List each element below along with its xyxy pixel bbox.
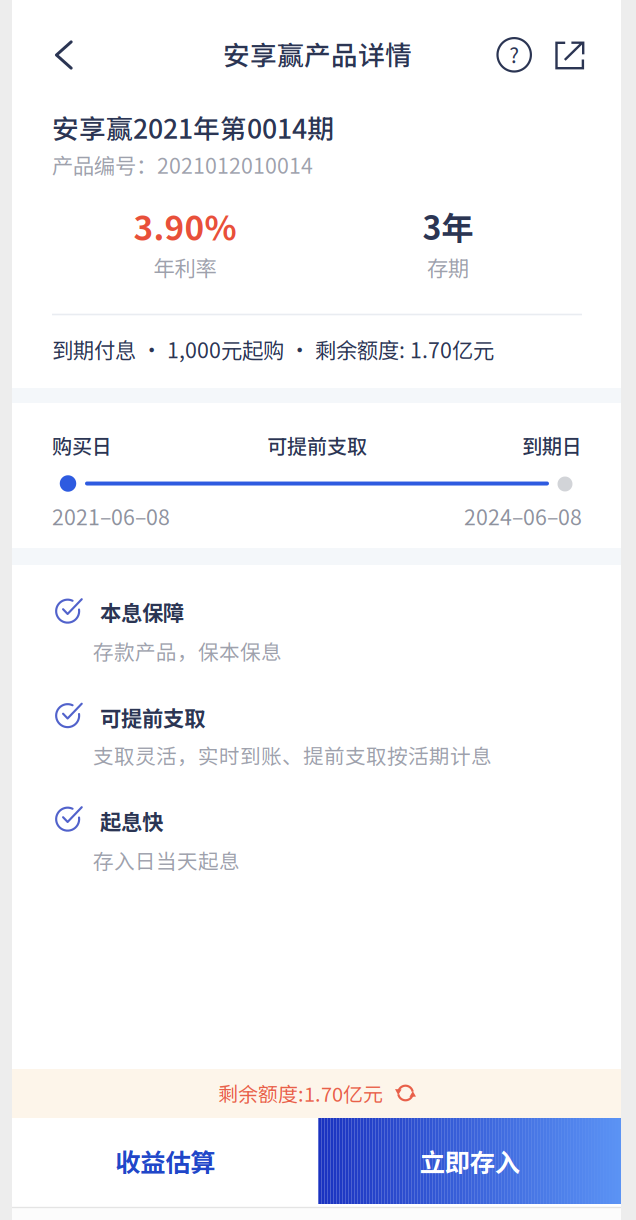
staticText: 可提前支取 — [100, 702, 205, 733]
staticText: 立即存入 — [420, 1143, 520, 1179]
staticText: 支取灵活，实时到账、提前支取按活期计息 — [93, 740, 492, 770]
staticText: 剩余额度:1.70亿元 — [218, 1078, 383, 1107]
staticText: 起息快 — [100, 805, 163, 836]
staticText: 到期日 — [522, 430, 582, 459]
button[interactable]: 分享 — [542, 9, 598, 102]
staticText: 收益估算 — [115, 1143, 215, 1179]
staticText: 安享赢2021年第0014期 — [52, 108, 334, 146]
staticText: ? — [509, 39, 519, 69]
staticText: 存款产品，保本保息 — [93, 636, 282, 666]
staticText: 到期付息 · 1,000元起购 · 剩余额度: 1.70亿元 — [52, 334, 494, 364]
staticText: 可提前支取 — [267, 430, 367, 459]
staticText: 本息保障 — [100, 596, 184, 627]
staticText: 购买日 — [52, 430, 112, 459]
staticText: 2024–06–08 — [464, 501, 582, 531]
staticText: 2021–06–08 — [52, 501, 170, 531]
staticText: 存入日当天起息 — [93, 845, 240, 875]
staticText: 3.90% — [133, 202, 236, 250]
staticText: 产品编号：2021012010014 — [52, 149, 313, 180]
staticText: 年利率 — [153, 252, 216, 282]
button[interactable]: 收益估算 — [12, 1118, 318, 1204]
button[interactable]: 帮助 — [486, 8, 542, 101]
button[interactable]: 返回 — [26, 8, 102, 101]
staticText: 3年 — [422, 203, 473, 249]
staticText: 存期 — [427, 252, 469, 282]
button[interactable]: 立即存入 — [318, 1118, 621, 1204]
staticText: 安享赢产品详情 — [223, 34, 412, 73]
